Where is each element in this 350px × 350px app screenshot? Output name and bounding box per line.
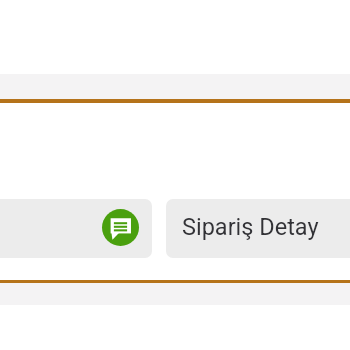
button[interactable]: Sipariş Detay bbox=[166, 199, 350, 258]
staticText: Sipariş Detay bbox=[182, 213, 319, 241]
button[interactable]: Mesaj bbox=[0, 199, 152, 258]
